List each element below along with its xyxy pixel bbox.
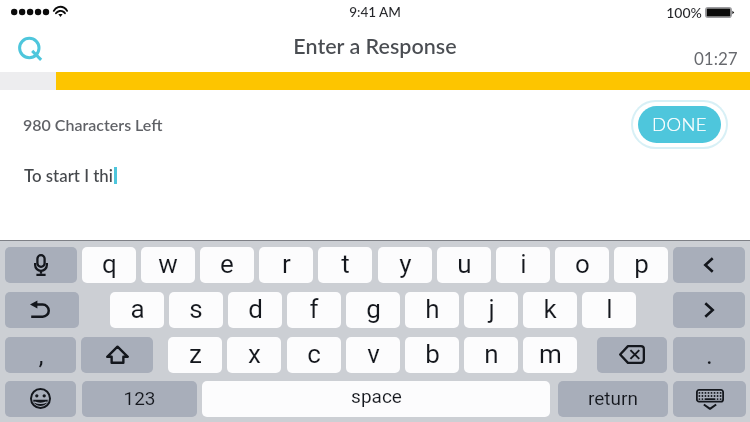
staticText: i [520,249,527,279]
staticText: DONE [652,113,707,135]
staticText: r [282,249,291,279]
staticText: 980 Characters Left [23,115,163,134]
button[interactable]: b [405,337,459,373]
button[interactable]: f [287,292,341,328]
staticText: z [189,339,202,369]
button[interactable]: Shift [81,337,153,373]
button[interactable]: g [346,292,400,328]
staticText: p [634,249,649,279]
staticText: . [706,340,713,370]
button[interactable]: z [168,337,222,373]
button[interactable]: return [558,381,668,417]
button[interactable]: c [287,337,341,373]
staticText: e [220,249,234,279]
button[interactable]: q [82,247,136,283]
button[interactable]: Response text field [0,155,750,240]
button[interactable]: . [673,337,745,373]
button[interactable]: h [405,292,459,328]
staticText: 01:27 [694,48,738,68]
staticText: m [539,339,562,369]
button[interactable]: n [464,337,518,373]
button[interactable]: s [169,292,223,328]
button[interactable]: Backspace [597,337,667,373]
button[interactable]: Voice input [5,247,77,283]
staticText: return [588,387,638,409]
staticText: q [102,249,117,279]
button[interactable]: Undo [5,292,79,328]
staticText: d [248,294,263,324]
staticText: k [543,294,557,324]
staticText: a [130,294,145,324]
staticText: t [341,249,350,279]
staticText: 100% [666,4,702,21]
staticText: w [158,249,178,279]
staticText: n [484,339,499,369]
button[interactable]: m [523,337,577,373]
staticText: c [307,339,321,369]
button[interactable]: r [259,247,313,283]
button[interactable]: o [555,247,609,283]
button[interactable]: l [582,292,636,328]
staticText: space [351,385,402,407]
button[interactable]: j [464,292,518,328]
staticText: b [425,339,440,369]
button[interactable]: i [496,247,550,283]
button[interactable]: DONE [631,100,728,149]
button[interactable]: y [378,247,432,283]
button[interactable]: w [141,247,195,283]
button[interactable]: , [5,337,76,373]
staticText: j [488,294,495,324]
staticText: y [399,249,412,279]
staticText: v [367,339,380,369]
button[interactable]: e [200,247,254,283]
button[interactable]: t [318,247,372,283]
staticText: , [38,340,44,370]
button[interactable]: u [437,247,491,283]
button[interactable]: space [202,381,550,417]
staticText: s [189,294,203,324]
staticText: 123 [123,387,156,409]
button[interactable]: Previous field [673,247,745,283]
button[interactable]: v [346,337,400,373]
button[interactable]: Emoji [5,381,76,417]
button[interactable]: p [614,247,668,283]
button[interactable]: 123 [82,381,197,417]
button[interactable]: Search [13,32,46,65]
staticText: f [309,294,319,324]
button[interactable]: x [227,337,281,373]
staticText: u [457,249,472,279]
staticText: h [425,294,440,324]
staticText: To start I thi [24,165,113,185]
button[interactable]: a [110,292,164,328]
staticText: x [248,339,261,369]
button[interactable]: Next field [673,292,745,328]
button[interactable]: d [228,292,282,328]
staticText: g [366,294,381,324]
button[interactable]: k [523,292,577,328]
staticText: l [606,294,613,324]
staticText: Enter a Response [0,33,750,59]
staticText: 9:41 AM [349,4,401,20]
staticText: o [575,249,590,279]
button[interactable]: Hide keyboard [673,381,746,417]
